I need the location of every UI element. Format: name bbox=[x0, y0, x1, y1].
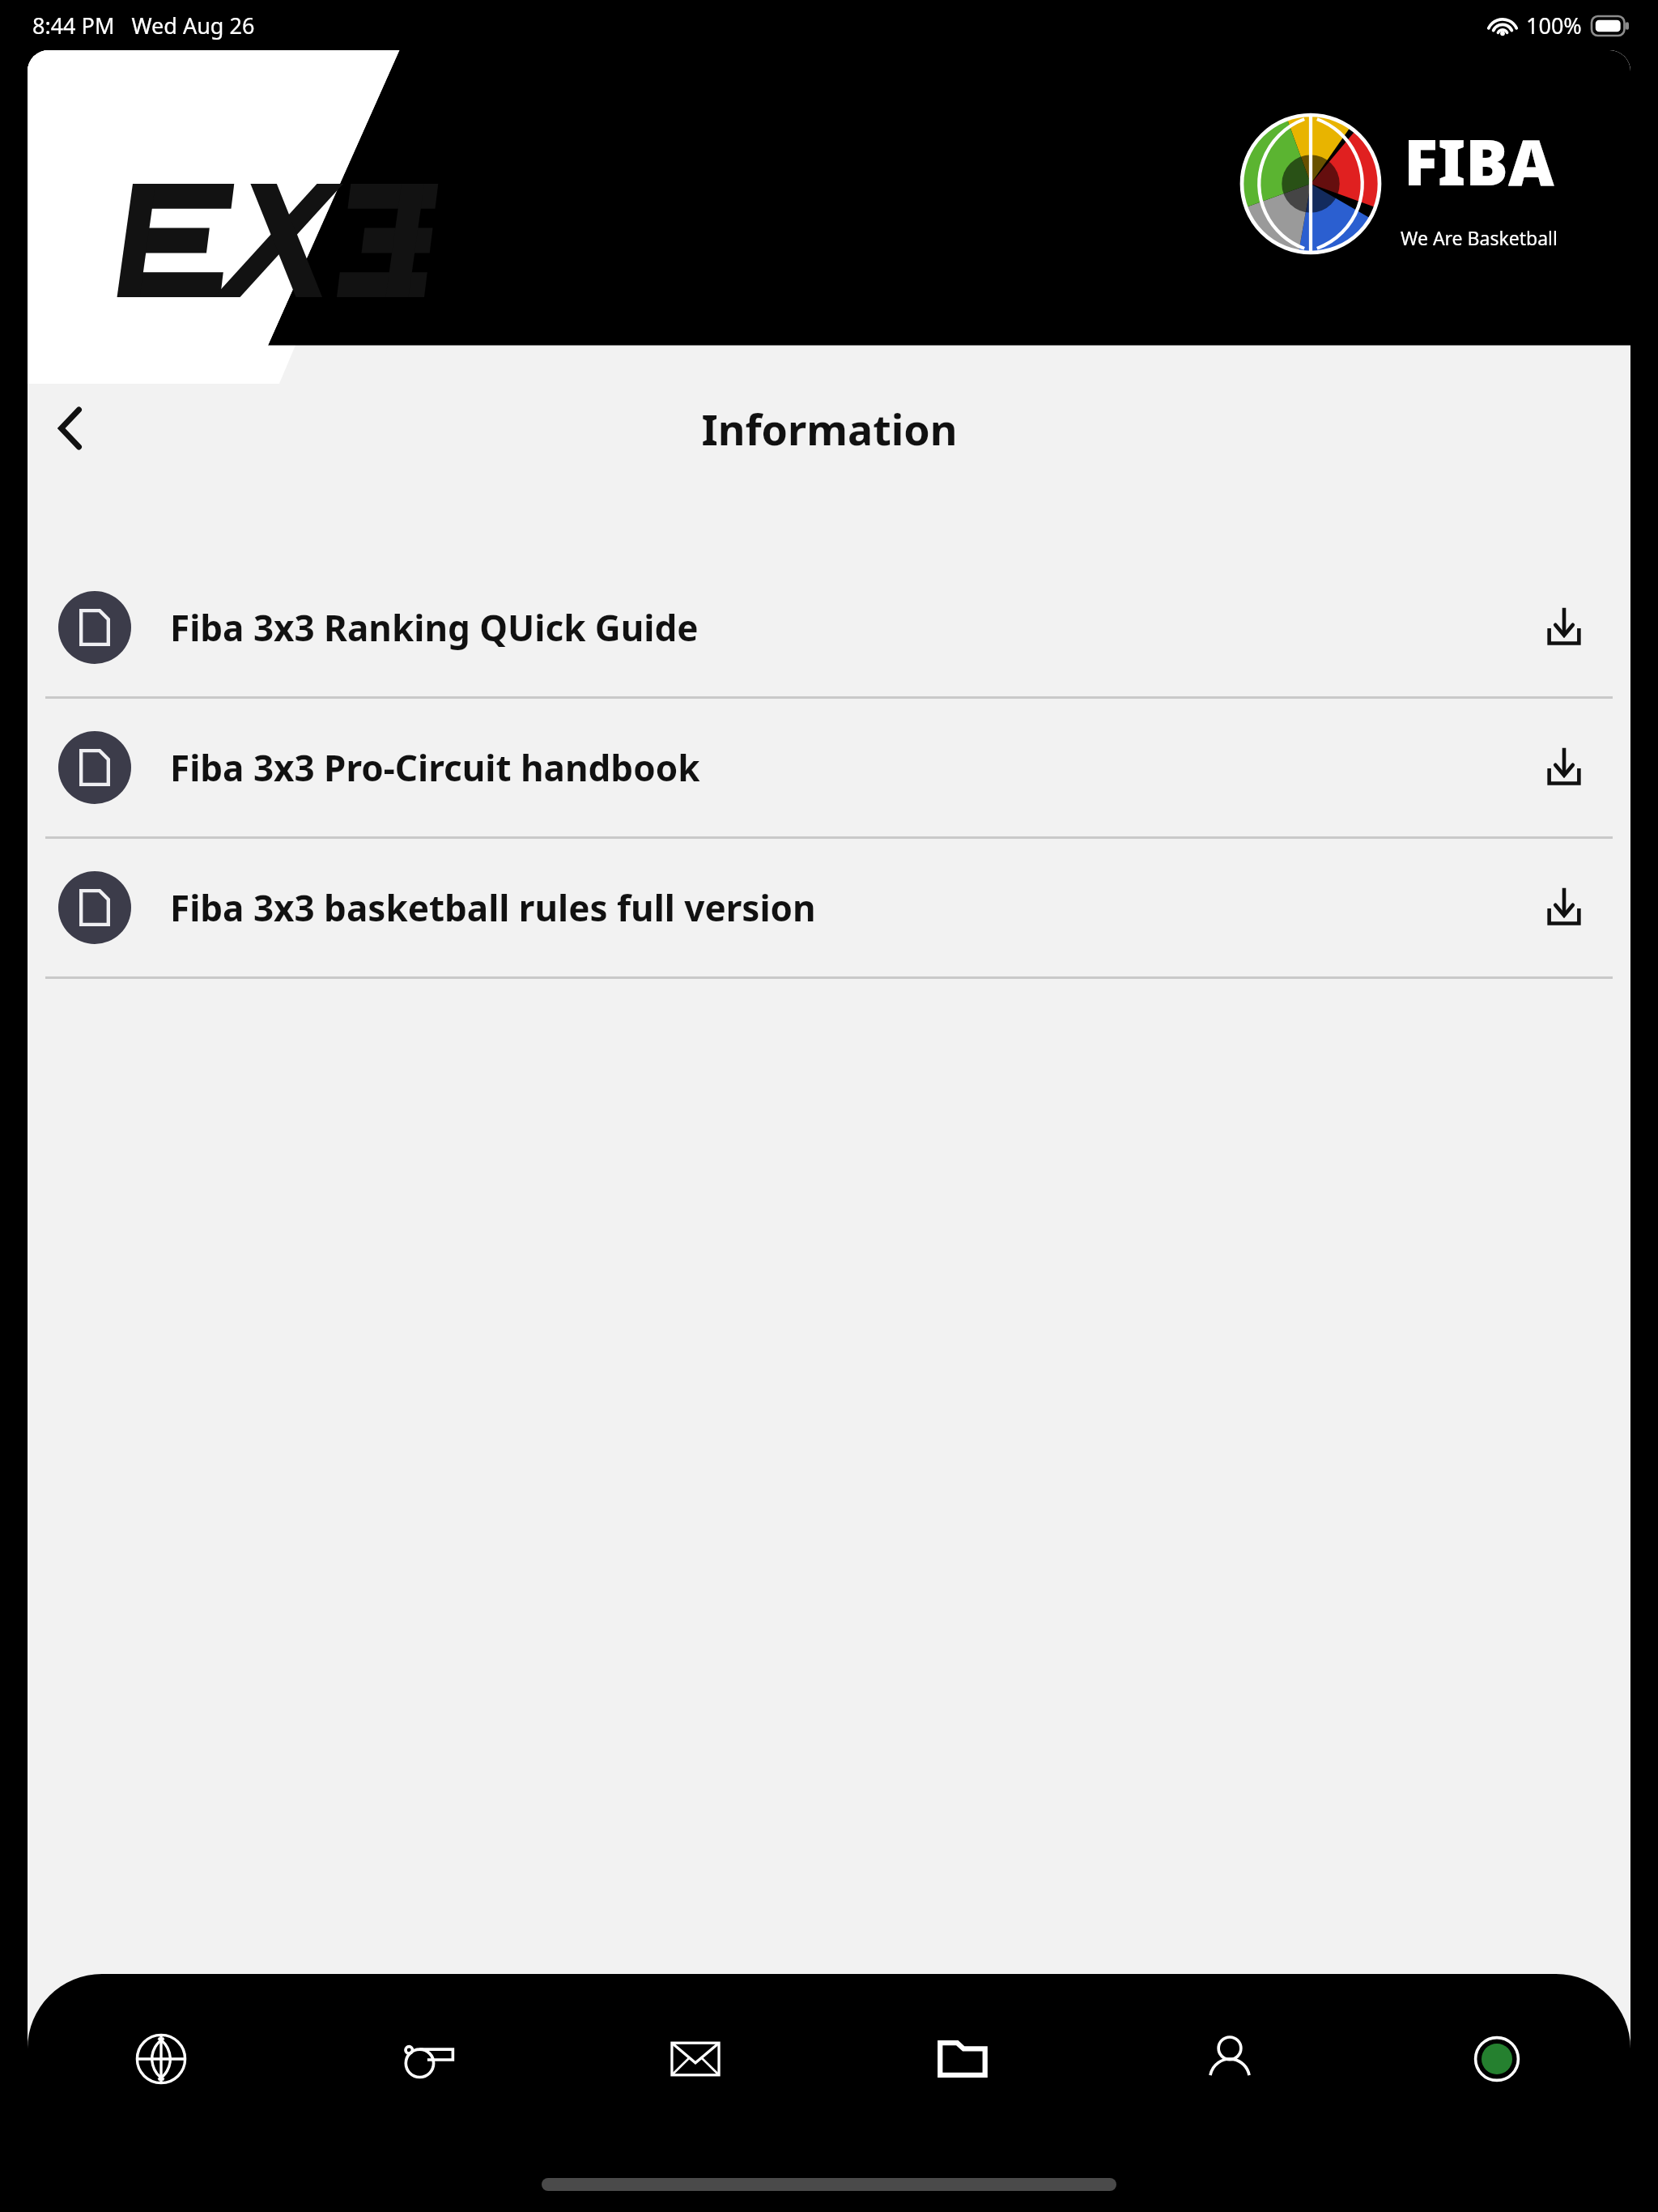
button[interactable]: Fiba 3x3 Ranking QUick Guide bbox=[28, 559, 1630, 699]
staticText: 8:44 PM Wed Aug 26 bbox=[32, 11, 255, 40]
staticText: Fiba 3x3 basketball rules full version bbox=[170, 883, 816, 932]
staticText: We Are Basketball bbox=[1401, 225, 1558, 250]
staticText: FIBA bbox=[1404, 118, 1554, 204]
button[interactable]: Fiba 3x3 basketball rules full version bbox=[28, 839, 1630, 979]
button[interactable]: Download bbox=[1528, 732, 1600, 803]
button[interactable]: Fiba 3x3 Pro-Circuit handbook bbox=[28, 699, 1630, 839]
button[interactable]: Messages bbox=[562, 2006, 829, 2112]
button[interactable]: Documents bbox=[829, 2006, 1096, 2112]
button[interactable]: Download bbox=[1528, 592, 1600, 663]
button[interactable]: Games bbox=[28, 2006, 295, 2112]
button[interactable]: Download bbox=[1528, 872, 1600, 943]
button[interactable]: Status bbox=[1363, 2006, 1630, 2112]
staticText: Fiba 3x3 Pro-Circuit handbook bbox=[170, 743, 700, 792]
button[interactable]: Back bbox=[36, 393, 105, 463]
staticText: Information bbox=[701, 400, 958, 457]
staticText: Fiba 3x3 Ranking QUick Guide bbox=[170, 603, 699, 652]
button[interactable]: Referee bbox=[295, 2006, 562, 2112]
button[interactable]: Profile bbox=[1096, 2006, 1363, 2112]
staticText: 100% bbox=[1526, 11, 1582, 40]
